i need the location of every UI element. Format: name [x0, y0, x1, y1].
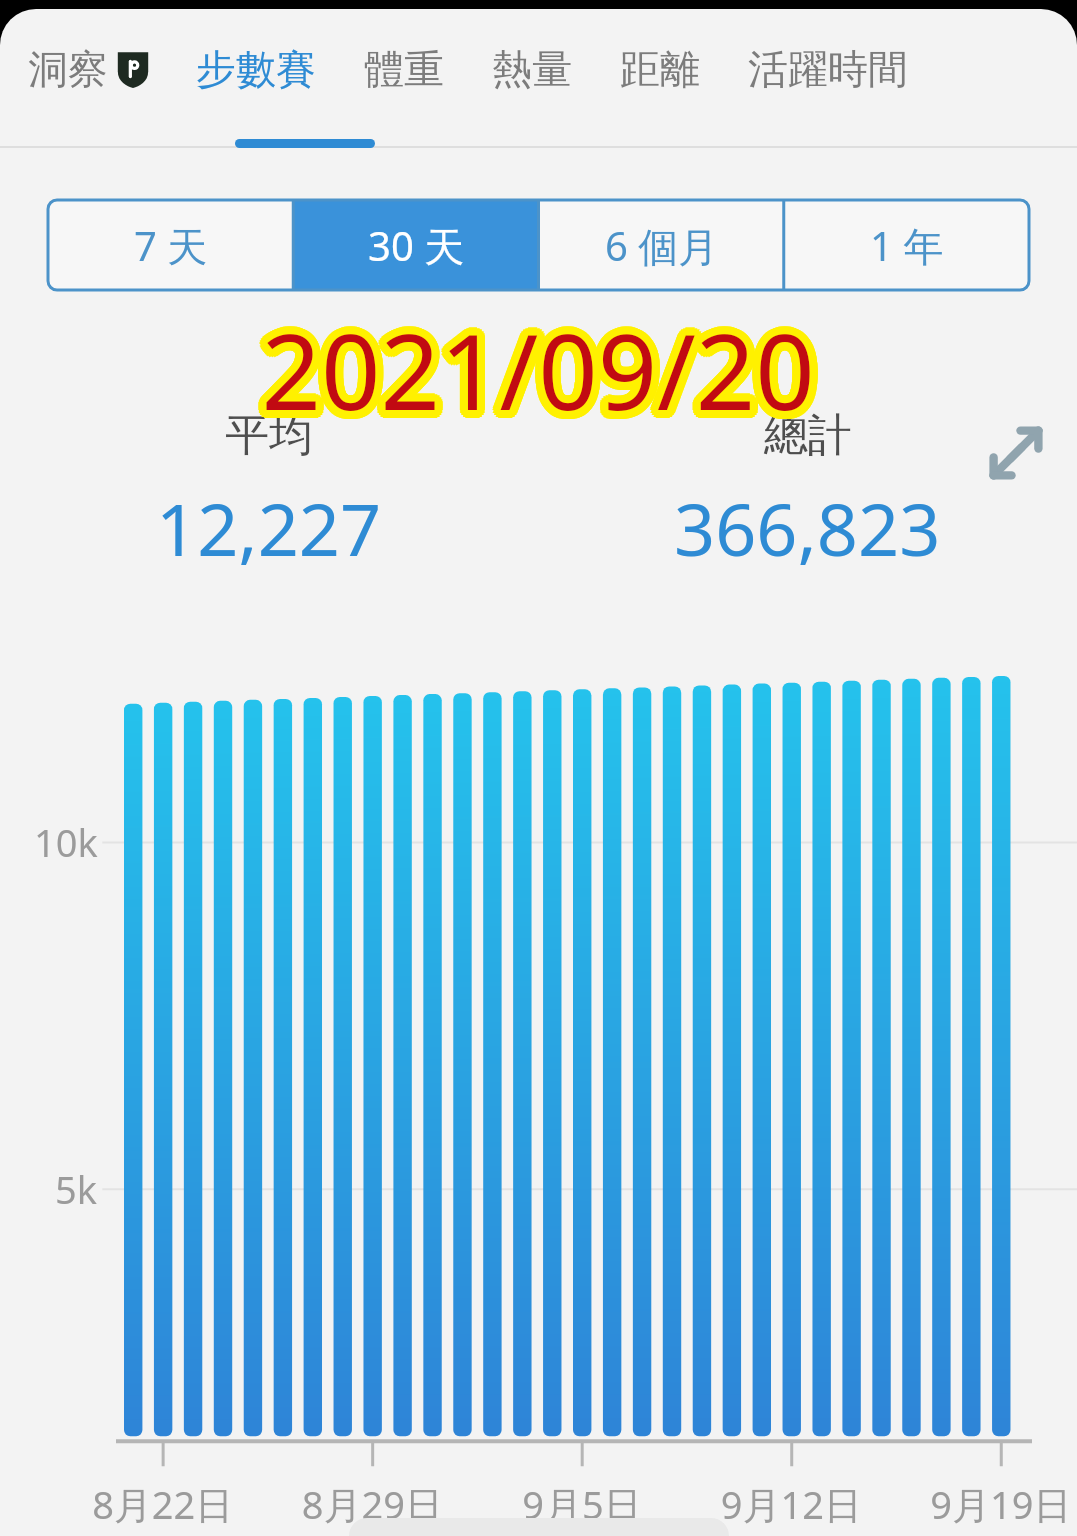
staticText: 平均 — [225, 408, 313, 463]
staticText: 7 天 — [134, 218, 208, 273]
button[interactable]: 平均 — [0, 408, 538, 577]
staticText: 步數賽 — [196, 44, 316, 94]
button[interactable]: Expand chart — [977, 414, 1055, 492]
staticText: 洞察 — [28, 44, 108, 94]
button[interactable]: 7 天 — [48, 200, 294, 290]
button[interactable]: 6 個月 — [539, 200, 784, 290]
button[interactable]: 30 天 — [294, 200, 539, 290]
staticText: 熱量 — [492, 44, 572, 94]
button[interactable]: 距離 — [610, 26, 710, 112]
staticText: 366,823 — [674, 479, 941, 577]
staticText: 1 年 — [870, 218, 944, 273]
button[interactable]: 1 年 — [784, 200, 1029, 290]
staticText: 總計 — [764, 408, 852, 463]
staticText: 6 個月 — [605, 218, 719, 273]
staticText: 12,227 — [156, 479, 382, 577]
staticText: 體重 — [364, 44, 444, 94]
button[interactable]: 洞察 — [18, 26, 162, 112]
staticText: 30 天 — [368, 218, 465, 273]
button[interactable]: 步數賽 — [186, 26, 326, 112]
staticText: 距離 — [620, 44, 700, 94]
staticText: 活躍時間 — [748, 44, 908, 94]
button[interactable]: 熱量 — [482, 26, 582, 112]
button[interactable]: 總計 — [538, 408, 1077, 577]
button[interactable]: 活躍時間 — [738, 26, 918, 112]
button[interactable]: 體重 — [354, 26, 454, 112]
